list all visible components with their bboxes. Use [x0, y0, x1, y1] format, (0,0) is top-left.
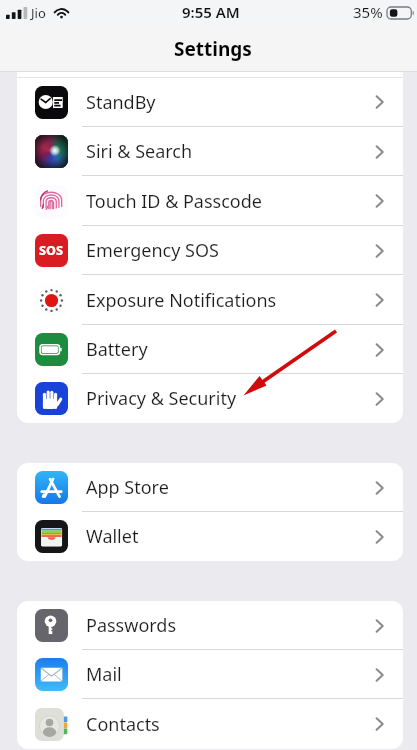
staticText: Wallet [86, 524, 139, 549]
staticText: Exposure Notifications [86, 288, 277, 313]
button[interactable]: Touch ID & Passcode [17, 176, 403, 226]
button[interactable]: Contacts [17, 699, 403, 749]
button[interactable]: Mail [17, 650, 403, 699]
button[interactable]: App Store [17, 463, 403, 512]
button[interactable]: StandBy [17, 72, 403, 127]
staticText: Jio [31, 4, 46, 22]
button[interactable]: Battery [17, 325, 403, 374]
staticText: Battery [86, 337, 148, 362]
staticText: Passwords [86, 613, 177, 638]
staticText: SOS [39, 242, 64, 259]
staticText: StandBy [86, 90, 156, 115]
staticText: Settings [174, 36, 252, 62]
button[interactable]: Wallet [17, 512, 403, 561]
staticText: Emergency SOS [86, 238, 219, 263]
staticText: Mail [86, 662, 122, 687]
button[interactable]: Privacy & Security [17, 374, 403, 423]
staticText: 9:55 AM [182, 2, 240, 22]
button[interactable]: Siri & Search [17, 127, 403, 176]
staticText: Privacy & Security [86, 386, 237, 411]
button[interactable]: Passwords [17, 601, 403, 650]
button[interactable]: Exposure Notifications [17, 275, 403, 325]
staticText: Siri & Search [86, 139, 193, 164]
staticText: App Store [86, 475, 169, 500]
staticText: Touch ID & Passcode [86, 189, 262, 214]
staticText: Contacts [86, 712, 160, 737]
button[interactable]: Emergency SOS [17, 226, 403, 275]
staticText: 35% [353, 2, 383, 22]
